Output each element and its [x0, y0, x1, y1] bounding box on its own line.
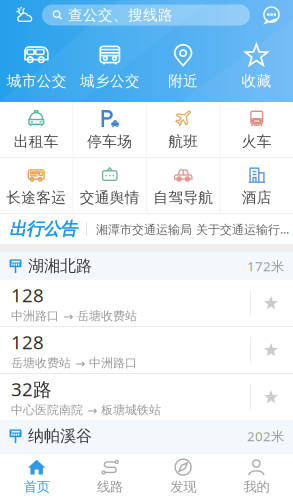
- staticText: 线路: [97, 479, 123, 495]
- staticText: 航班: [168, 132, 198, 150]
- staticText: 发现: [170, 479, 196, 495]
- staticText: 收藏: [241, 72, 271, 90]
- button[interactable]: 航班: [147, 102, 219, 157]
- staticText: 中心医院南院 → 板塘城铁站: [11, 402, 161, 417]
- button[interactable]: 附近: [146, 42, 220, 90]
- staticText: 自驾导航: [153, 188, 213, 206]
- staticText: 32路: [11, 377, 52, 401]
- button[interactable]: 发现: [146, 458, 220, 495]
- button[interactable]: 火车: [220, 102, 293, 157]
- button[interactable]: 停车场: [73, 102, 146, 157]
- staticText: 128: [11, 283, 44, 307]
- button[interactable]: 32路: [0, 374, 293, 420]
- button[interactable]: 128: [0, 280, 293, 326]
- staticText: 中洲路口 → 岳塘收费站: [11, 308, 137, 323]
- staticText: 172米: [247, 257, 284, 275]
- staticText: 附近: [168, 72, 198, 90]
- button[interactable]: 长途客运: [0, 158, 72, 212]
- staticText: 纳帕溪谷: [28, 426, 92, 446]
- staticText: 我的: [243, 479, 269, 495]
- button[interactable]: 128: [0, 327, 293, 373]
- button[interactable]: 出行公告: [0, 214, 293, 244]
- staticText: 停车场: [87, 132, 132, 150]
- staticText: 首页: [24, 479, 50, 495]
- staticText: 城市公交: [7, 72, 67, 90]
- button[interactable]: 城乡公交: [73, 42, 146, 90]
- button[interactable]: 首页: [0, 458, 73, 495]
- staticText: 湖湘北路: [28, 256, 92, 276]
- button[interactable]: 我的: [220, 458, 293, 495]
- button[interactable]: 自驾导航: [147, 158, 219, 212]
- staticText: 128: [11, 330, 44, 354]
- button[interactable]: 线路: [73, 458, 146, 495]
- button[interactable]: 酒店: [220, 158, 293, 212]
- staticText: 长途客运: [6, 188, 66, 206]
- button[interactable]: 收藏: [220, 42, 293, 90]
- button[interactable]: 查公交、搜线路: [42, 4, 250, 25]
- staticText: 火车: [242, 132, 272, 150]
- staticText: 出租车: [14, 132, 59, 150]
- button[interactable]: 交通舆情: [73, 158, 146, 212]
- staticText: 酒店: [242, 188, 272, 206]
- button[interactable]: 天气: [7, 3, 42, 27]
- staticText: 湘潭市交通运输局 关于交通运输行业疫情防...: [96, 221, 289, 237]
- staticText: 岳塘收费站 → 中洲路口: [11, 355, 137, 370]
- staticText: 出行公告: [9, 218, 77, 240]
- staticText: 202米: [247, 427, 284, 445]
- button[interactable]: 出租车: [0, 102, 72, 157]
- button[interactable]: 消息: [250, 3, 293, 27]
- button[interactable]: 城市公交: [0, 42, 73, 90]
- staticText: 城乡公交: [80, 72, 140, 90]
- staticText: 交通舆情: [80, 188, 140, 206]
- staticText: 查公交、搜线路: [68, 6, 173, 24]
